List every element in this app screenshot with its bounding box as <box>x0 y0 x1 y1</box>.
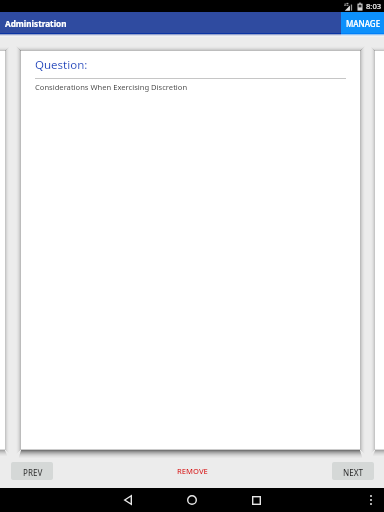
staticText: Administration <box>5 18 67 29</box>
button[interactable]: NEXT <box>332 462 374 480</box>
button[interactable]: Home <box>162 488 222 512</box>
button[interactable]: Back <box>94 488 162 512</box>
button[interactable]: Recents <box>222 488 290 512</box>
button[interactable]: Question: <box>21 51 360 449</box>
staticText: NEXT <box>343 467 364 478</box>
staticText: PREV <box>23 467 43 478</box>
staticText: Considerations When Exercising Discretio… <box>35 82 188 92</box>
staticText: MANAGE <box>346 18 381 29</box>
button[interactable]: More options <box>358 488 384 512</box>
staticText: 8:03 <box>366 1 382 11</box>
staticText: Question: <box>35 57 88 73</box>
staticText: REMOVE <box>177 466 208 476</box>
button[interactable]: PREV <box>11 462 53 480</box>
button[interactable]: MANAGE <box>341 12 384 34</box>
button[interactable]: REMOVE <box>164 462 220 479</box>
